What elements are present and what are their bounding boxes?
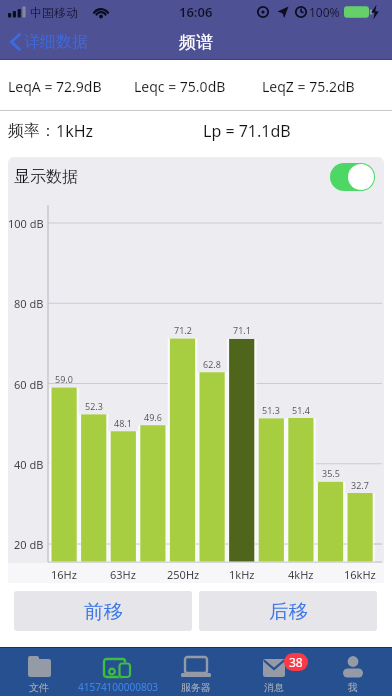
staticText: 60 dB	[14, 377, 44, 392]
staticText: 我	[348, 681, 358, 694]
button[interactable]	[0, 647, 78, 696]
staticText: 20 dB	[14, 537, 44, 552]
button[interactable]: 后移	[199, 591, 377, 631]
staticText: 中国移动	[30, 5, 78, 20]
staticText: 后移	[269, 599, 308, 624]
staticText: Lp = 71.1dB	[203, 120, 291, 142]
button[interactable]	[157, 647, 235, 696]
staticText: Leqc = 75.0dB	[134, 77, 226, 96]
staticText: 100 dB	[8, 216, 44, 231]
staticText: 1kHz	[56, 120, 94, 142]
button[interactable]	[330, 163, 375, 191]
button[interactable]	[78, 647, 156, 696]
staticText: 16kHz	[344, 567, 376, 582]
staticText: 40 dB	[14, 457, 44, 472]
staticText: 文件	[29, 681, 49, 694]
staticText: 52.3	[85, 400, 103, 412]
staticText: 62.8	[203, 358, 221, 370]
staticText: 49.6	[144, 411, 162, 423]
button[interactable]	[4, 28, 114, 56]
staticText: 消息	[264, 681, 284, 694]
staticText: 35.5	[322, 467, 340, 479]
staticText: 100%	[309, 4, 340, 20]
button[interactable]	[314, 647, 392, 696]
button[interactable]: 前移	[14, 591, 192, 631]
staticText: 38	[289, 654, 303, 670]
staticText: 显示数据	[14, 167, 78, 187]
staticText: 51.3	[262, 404, 280, 416]
staticText: 16:06	[179, 3, 213, 21]
staticText: 4kHz	[288, 567, 314, 582]
staticText: 48.1	[114, 417, 132, 429]
staticText: 服务器	[181, 681, 211, 694]
staticText: 1kHz	[229, 567, 255, 582]
staticText: 250Hz	[167, 567, 200, 582]
staticText: 80 dB	[14, 296, 44, 311]
staticText: 频率：	[8, 121, 56, 141]
staticText: 详细数据	[24, 32, 88, 52]
staticText: 63Hz	[110, 567, 136, 582]
staticText: 32.7	[351, 479, 369, 491]
staticText: 前移	[84, 599, 123, 624]
staticText: 71.1	[233, 324, 251, 336]
staticText: 41574100000803	[78, 680, 159, 694]
staticText: 频谱	[179, 32, 213, 53]
staticText: 71.2	[174, 324, 192, 336]
staticText: 51.4	[292, 404, 310, 416]
staticText: 16Hz	[51, 567, 77, 582]
staticText: 59.0	[55, 373, 73, 385]
staticText: LeqZ = 75.2dB	[262, 77, 355, 96]
staticText: LeqA = 72.9dB	[8, 77, 102, 96]
button[interactable]	[235, 647, 313, 696]
